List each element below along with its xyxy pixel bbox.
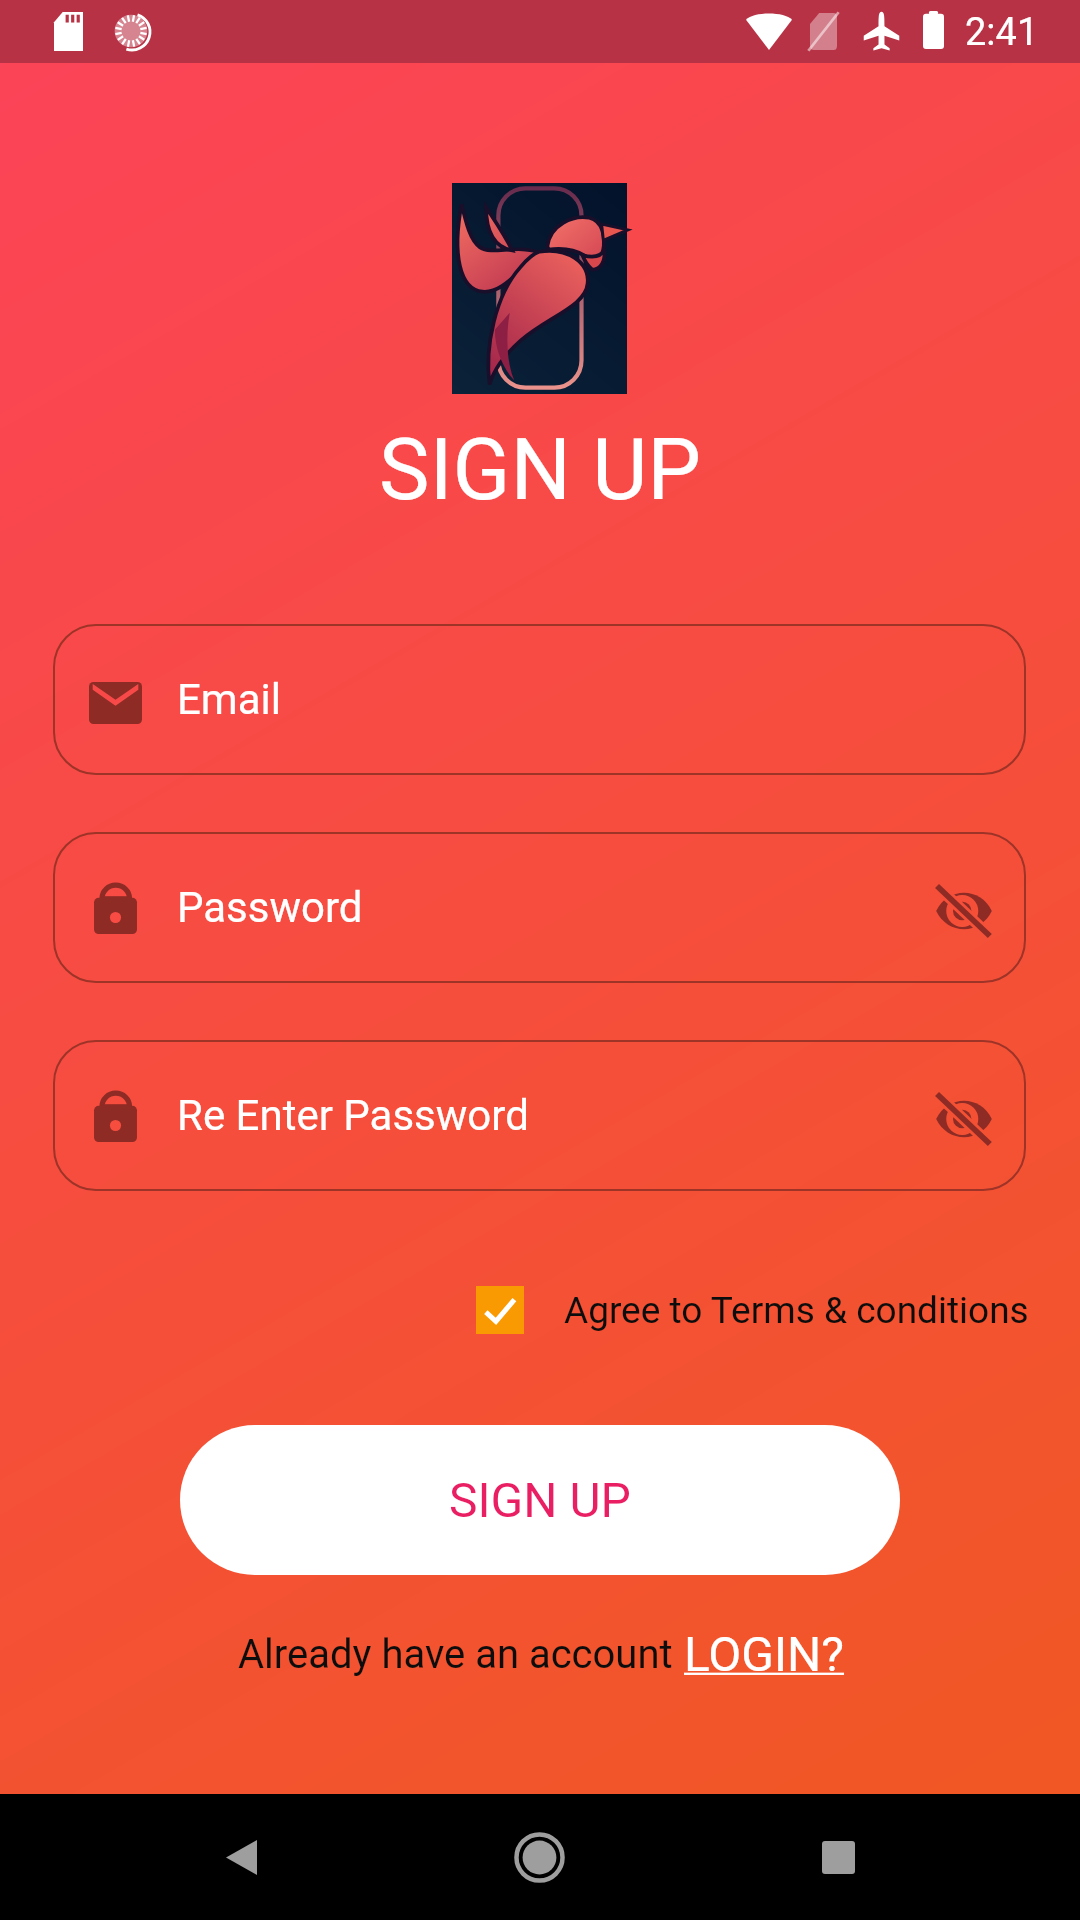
button[interactable]: Show password xyxy=(935,886,993,936)
staticText: SIGN UP xyxy=(379,420,701,520)
button[interactable]: Email xyxy=(53,624,1026,775)
staticText: SIGN UP xyxy=(449,1472,631,1528)
staticText: Password xyxy=(177,883,363,932)
button[interactable]: Home xyxy=(494,1812,584,1902)
staticText: LOGIN? xyxy=(684,1626,845,1682)
button[interactable]: SIGN UP xyxy=(180,1425,900,1575)
button[interactable]: Recents xyxy=(793,1812,883,1902)
button[interactable]: Password xyxy=(53,832,1026,983)
button[interactable]: Back xyxy=(196,1812,286,1902)
button[interactable]: Re Enter Password xyxy=(53,1040,1026,1191)
staticText: Agree to Terms & conditions xyxy=(564,1289,1029,1332)
button[interactable]: Show password xyxy=(935,1094,993,1144)
staticText: Already have an account xyxy=(238,1631,673,1678)
staticText: Email xyxy=(177,675,281,724)
staticText: Re Enter Password xyxy=(177,1091,529,1140)
button[interactable]: Agree to Terms & conditions xyxy=(476,1286,1029,1334)
button[interactable]: LOGIN? xyxy=(684,1626,845,1682)
staticText: 2:41 xyxy=(965,10,1039,55)
